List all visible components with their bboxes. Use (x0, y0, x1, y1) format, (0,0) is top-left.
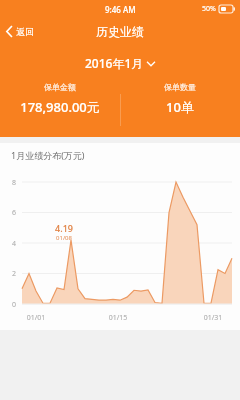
button[interactable]: 保单数量 (120, 82, 240, 116)
staticText: 4 (9, 239, 19, 249)
staticText: 1月业绩分布(万元) (11, 149, 85, 161)
staticText: 01/08 (56, 234, 72, 242)
button[interactable]: 返回 (0, 22, 42, 41)
staticText: 0 (9, 300, 19, 310)
staticText: 历史业绩 (96, 24, 144, 39)
staticText: 8 (9, 178, 19, 188)
staticText: 01/01 (22, 313, 50, 323)
staticText: 2016年1月 (85, 55, 144, 71)
button[interactable]: 2016年1月 (75, 50, 165, 76)
staticText: 返回 (16, 26, 34, 37)
staticText: 6 (9, 208, 19, 218)
staticText: 50% (202, 4, 216, 14)
button[interactable]: 保单金额 (0, 82, 120, 116)
staticText: 保单数量 (164, 82, 196, 92)
staticText: 01/31 (199, 313, 227, 323)
staticText: 9:46 AM (105, 4, 136, 15)
staticText: 178,980.00元 (20, 98, 100, 116)
staticText: 01/15 (104, 313, 132, 323)
staticText: 保单金额 (44, 82, 76, 92)
staticText: 10单 (166, 98, 194, 116)
staticText: 2 (9, 269, 19, 279)
staticText: 4.19 (55, 222, 73, 234)
